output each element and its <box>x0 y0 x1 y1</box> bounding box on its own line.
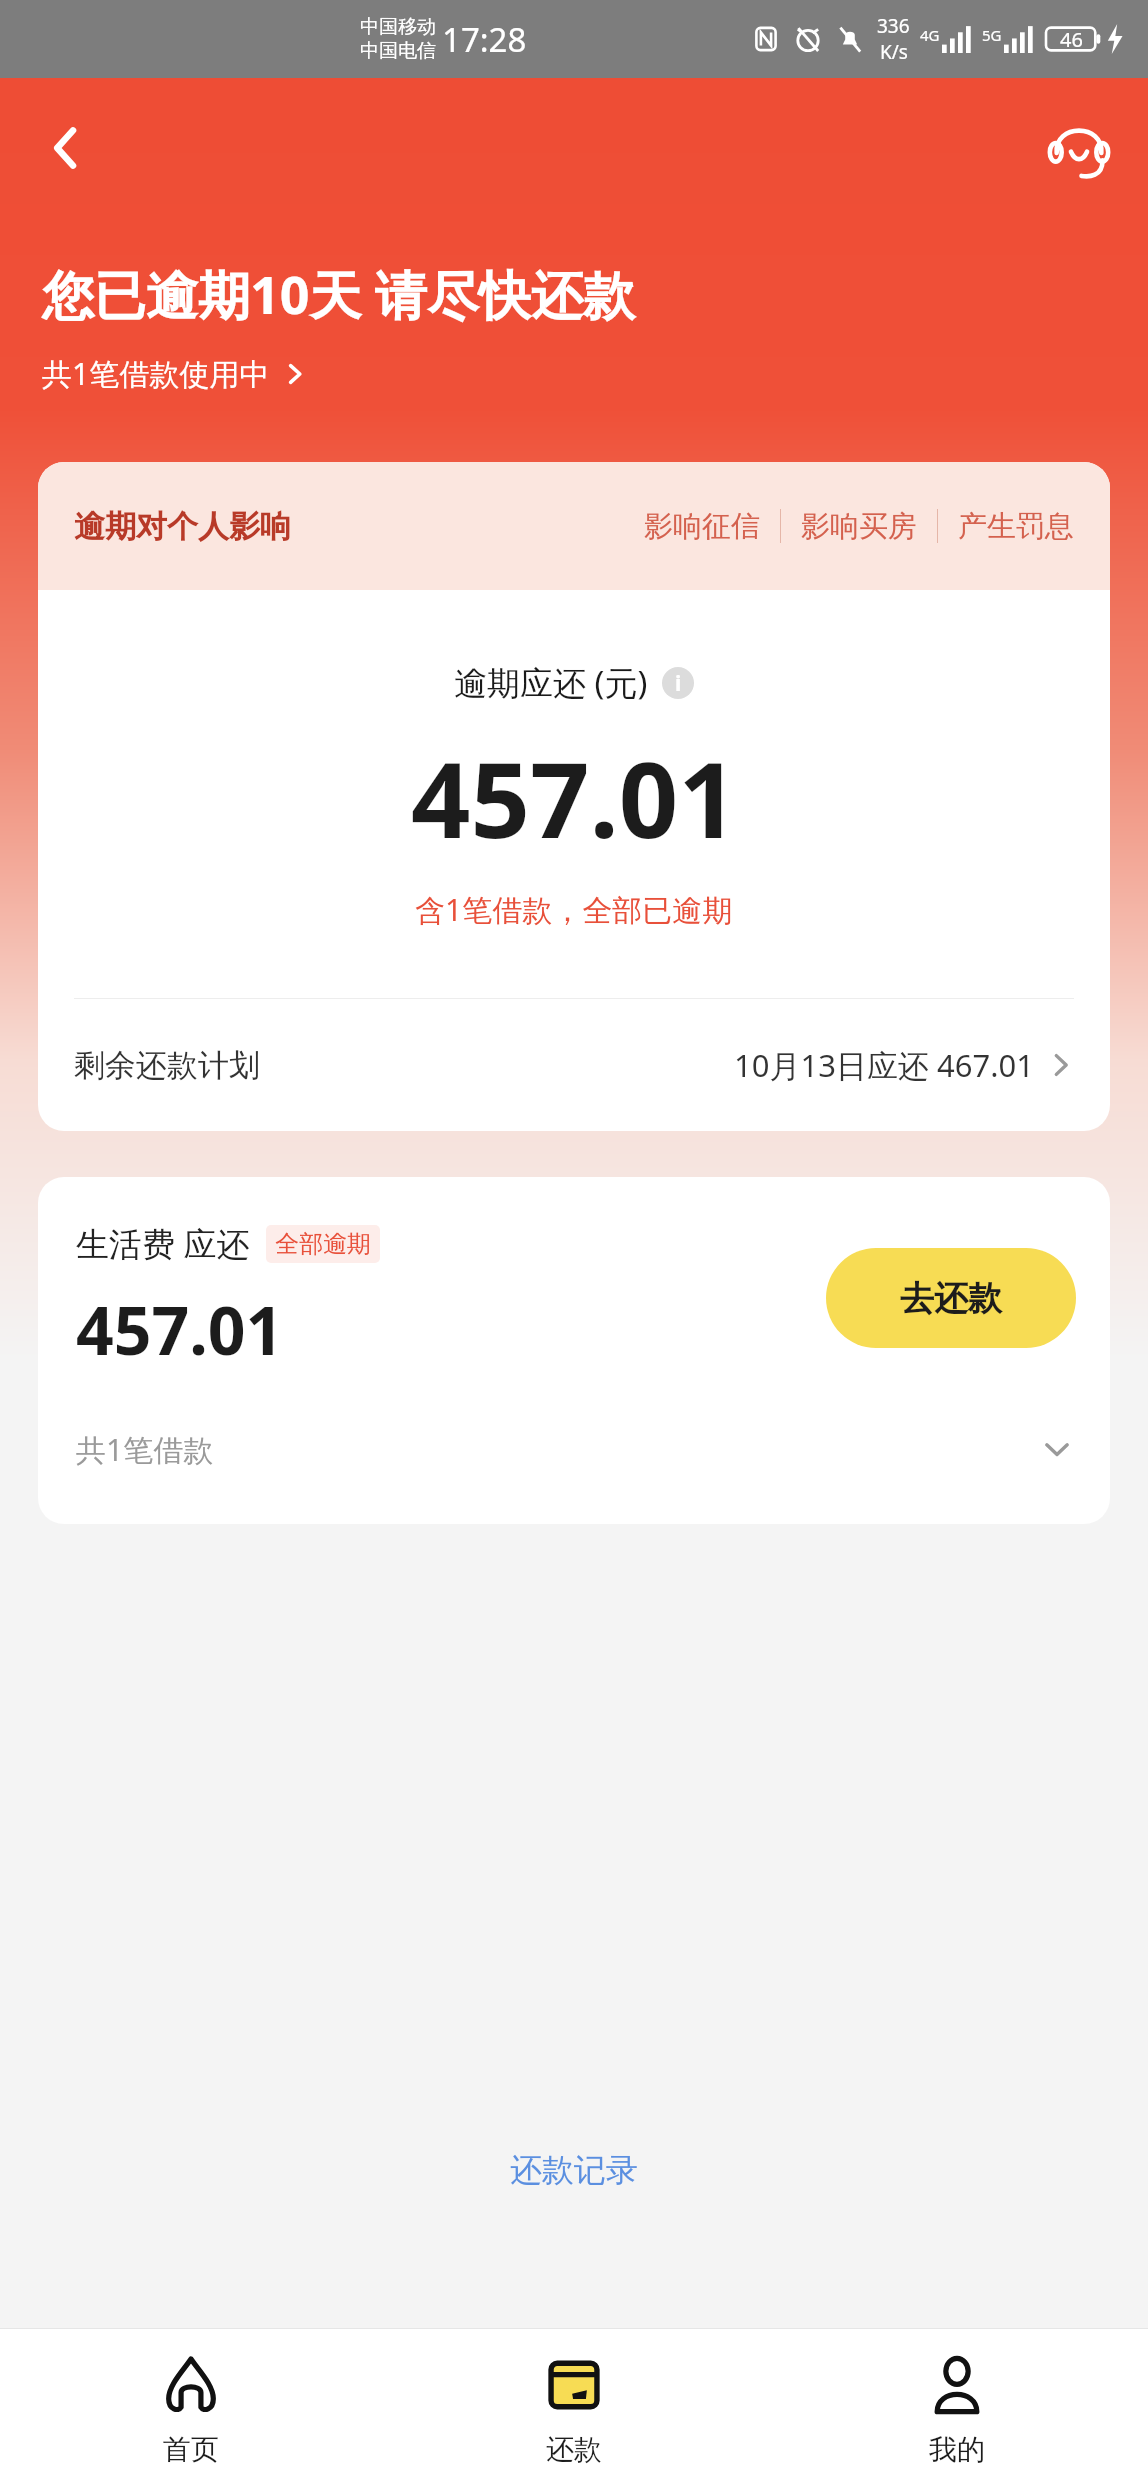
button[interactable]: 去还款 <box>826 1248 1076 1348</box>
staticText: 去还款 <box>900 1277 1002 1320</box>
staticText: 还款记录 <box>510 2150 638 2190</box>
staticText: 17:28 <box>442 17 527 62</box>
staticText: 共1笔借款使用中 <box>42 353 270 394</box>
button[interactable]: 共1笔借款 <box>38 1374 1110 1524</box>
button[interactable]: 还款 <box>382 2329 765 2492</box>
staticText: 还款 <box>546 2432 602 2467</box>
staticText: 4G <box>920 25 940 45</box>
staticText: 10月13日应还 467.01 <box>734 1044 1034 1086</box>
staticText: 含1笔借款，全部已逾期 <box>415 889 733 930</box>
staticText: 共1笔借款 <box>76 1429 214 1470</box>
button[interactable]: Customer service <box>1036 105 1122 191</box>
staticText: 我的 <box>929 2432 985 2467</box>
button[interactable]: 还款记录 <box>470 2132 678 2208</box>
staticText: 中国电信 <box>360 39 436 63</box>
staticText: 全部逾期 <box>275 1229 371 1259</box>
staticText: 457.01 <box>411 727 738 869</box>
staticText: 逾期对个人影响 <box>74 507 291 546</box>
staticText: 中国移动 <box>360 15 436 39</box>
button[interactable]: Back <box>26 108 106 188</box>
button[interactable]: 首页 <box>0 2329 382 2492</box>
button[interactable]: 剩余还款计划 <box>38 999 1110 1131</box>
staticText: 46 <box>1060 26 1083 53</box>
staticText: 剩余还款计划 <box>74 1046 260 1085</box>
staticText: 逾期应还 (元) <box>454 660 648 705</box>
staticText: 影响征信 <box>644 508 760 545</box>
staticText: 您已逾期10天 请尽快还款 <box>42 258 636 329</box>
staticText: K/s <box>880 39 908 65</box>
staticText: 457.01 <box>76 1284 284 1374</box>
staticText: 首页 <box>163 2432 219 2467</box>
button[interactable]: 我的 <box>765 2329 1148 2492</box>
staticText: 影响买房 <box>801 508 917 545</box>
staticText: i <box>675 669 682 698</box>
staticText: 产生罚息 <box>958 508 1074 545</box>
staticText: 生活费 应还 <box>76 1221 250 1266</box>
button[interactable]: 共1笔借款使用中 <box>42 353 306 394</box>
staticText: 5G <box>982 25 1002 45</box>
button[interactable]: Info <box>662 667 694 699</box>
staticText: 336 <box>877 13 910 39</box>
